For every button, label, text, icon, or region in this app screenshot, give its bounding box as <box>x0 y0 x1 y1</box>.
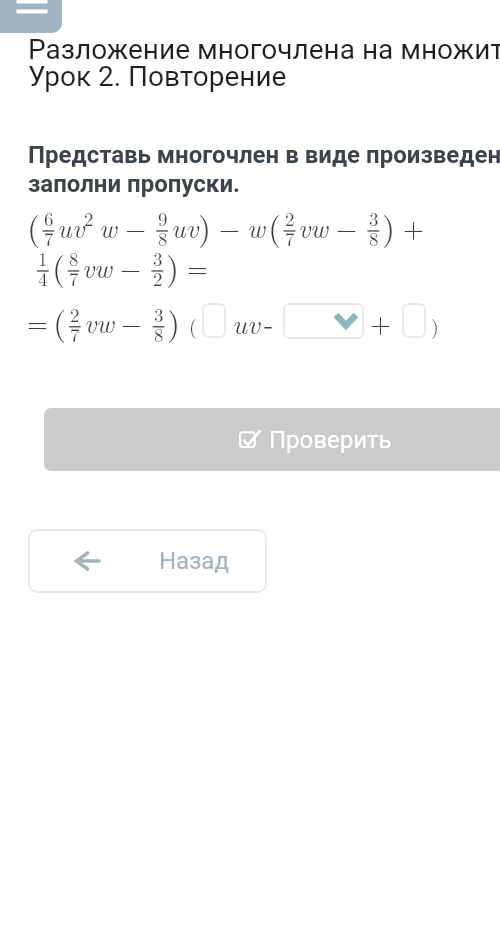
staticText: Проверить <box>269 426 392 454</box>
button[interactable]: Поле для ответа <box>402 303 426 338</box>
staticText: Назад <box>159 547 229 575</box>
button[interactable]: Выбрать значение <box>283 303 364 339</box>
button[interactable]: Назад <box>28 529 267 593</box>
button[interactable]: Поле для ответа <box>202 303 226 338</box>
button[interactable]: Проверить <box>44 408 500 471</box>
button[interactable]: Меню <box>0 0 62 33</box>
staticText: Представь многочлен в виде произведения,… <box>28 141 500 198</box>
staticText: Разложение многочлена на множители Урок … <box>28 33 500 93</box>
